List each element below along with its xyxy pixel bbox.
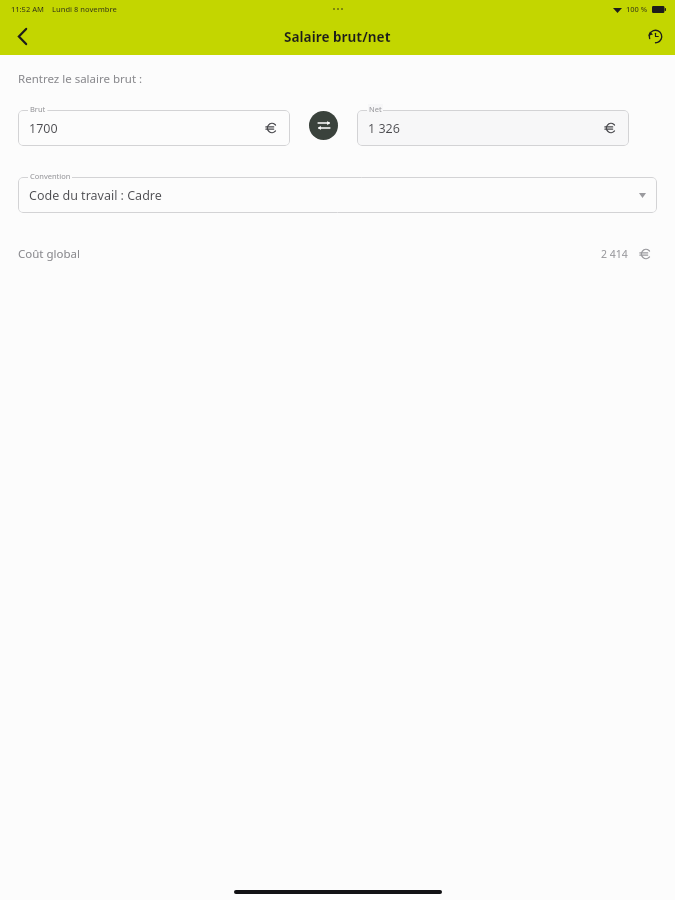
staticText: Brut <box>30 104 46 114</box>
staticText: 1 326 <box>368 120 400 137</box>
staticText: Rentrez le salaire brut : <box>18 71 143 87</box>
button[interactable]: 1700 <box>18 110 290 146</box>
staticText: Convention <box>30 171 71 181</box>
staticText: Coût global <box>18 246 80 262</box>
button[interactable]: Coût global <box>0 246 675 262</box>
staticText: 1700 <box>29 120 58 137</box>
button[interactable]: Code du travail : Cadre <box>18 177 657 213</box>
staticText: Lundi 8 novembre <box>52 4 117 14</box>
staticText: Salaire brut/net <box>284 28 391 46</box>
button[interactable]: Back <box>0 18 44 55</box>
staticText: Code du travail : Cadre <box>29 187 162 204</box>
staticText: 100 % <box>626 4 648 14</box>
staticText: 2 414 <box>601 247 628 261</box>
button[interactable]: History <box>635 18 675 55</box>
button[interactable]: Inverser brut et net <box>309 111 338 140</box>
staticText: Net <box>369 104 382 114</box>
button[interactable]: 1 326 <box>357 110 629 146</box>
staticText: 11:52 AM <box>11 4 44 14</box>
